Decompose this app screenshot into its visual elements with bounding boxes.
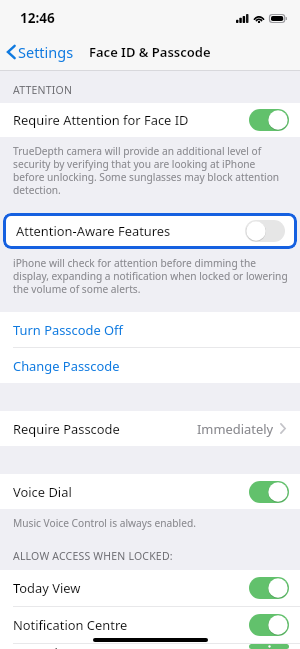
staticText: Immediately <box>197 420 274 438</box>
staticText: ALLOW ACCESS WHEN LOCKED: <box>13 549 173 563</box>
staticText: Require Attention for Face ID <box>13 111 189 129</box>
staticText: Voice Dial <box>13 483 72 501</box>
button[interactable]: Today View <box>0 570 300 606</box>
button[interactable]: Attention-Aware Features <box>3 213 297 249</box>
staticText: Attention-Aware Features <box>16 222 171 240</box>
staticText: TrueDepth camera will provide an additio… <box>13 144 289 197</box>
staticText: Turn Passcode Off <box>13 321 123 339</box>
staticText: Today View <box>13 579 81 597</box>
button[interactable]: Change Passcode <box>0 348 300 383</box>
button[interactable]: Voice Dial <box>0 474 300 509</box>
staticText: Music Voice Control is always enabled. <box>13 516 196 530</box>
staticText: Notification Centre <box>13 616 128 634</box>
button[interactable]: Switch on <box>249 614 289 636</box>
button[interactable]: Require Attention for Face ID <box>0 103 300 137</box>
button[interactable]: Switch on <box>249 644 289 649</box>
staticText: iPhone will check for attention before d… <box>13 256 289 296</box>
button[interactable]: Switch on <box>249 481 289 503</box>
staticText: Require Passcode <box>13 420 120 438</box>
staticText: Change Passcode <box>13 357 120 375</box>
staticText: 12:46 <box>20 9 55 27</box>
staticText: Face ID & Passcode <box>89 43 211 61</box>
button[interactable]: Notification Centre <box>0 607 300 643</box>
staticText: ATTENTION <box>13 83 73 97</box>
button[interactable]: Switch on <box>249 109 289 131</box>
button[interactable]: Require Passcode <box>0 411 300 446</box>
button[interactable]: Turn Passcode Off <box>0 312 300 347</box>
button[interactable]: Settings <box>0 42 80 62</box>
staticText: Settings <box>18 42 74 62</box>
button[interactable]: Switch off <box>245 220 285 242</box>
staticText: Control Centre <box>13 644 102 649</box>
button[interactable]: Control Centre <box>0 644 300 649</box>
button[interactable]: Switch on <box>249 577 289 599</box>
